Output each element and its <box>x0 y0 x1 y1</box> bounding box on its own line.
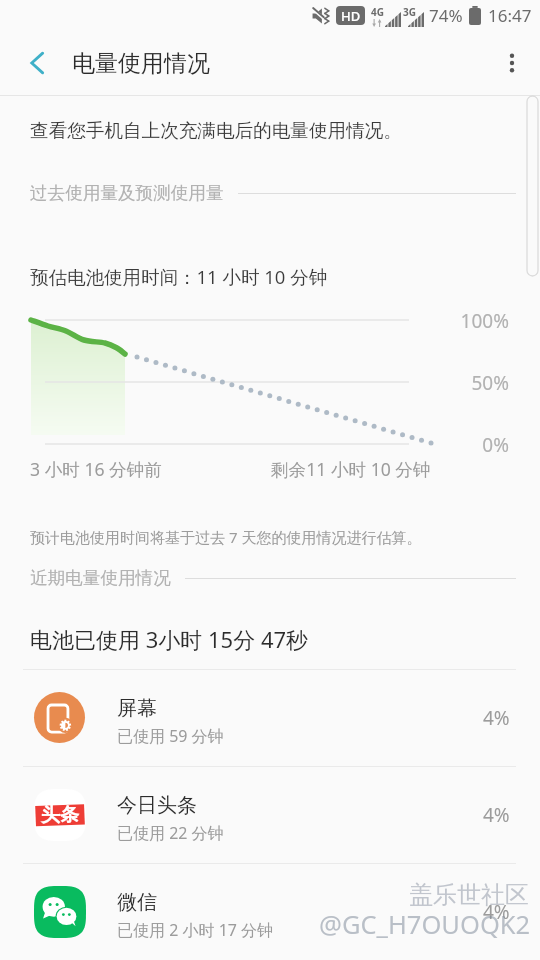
staticText: 3 小时 16 分钟前 <box>30 457 162 481</box>
staticText: 电量使用情况 <box>72 49 210 78</box>
staticText: 查看您手机自上次充满电后的电量使用情况。 <box>30 119 402 142</box>
staticText: 今日头条 <box>117 793 197 818</box>
staticText: 4G <box>371 5 384 19</box>
staticText: 电池已使用 3小时 15分 47秒 <box>30 624 309 654</box>
button[interactable]: 屏幕 <box>0 669 540 766</box>
staticText: 剩余11 小时 10 分钟 <box>271 457 431 481</box>
button[interactable]: Back <box>10 35 66 91</box>
staticText: 已使用 59 分钟 <box>117 725 224 747</box>
staticText: 盖乐世社区 <box>409 880 529 910</box>
staticText: 100% <box>0 308 509 334</box>
staticText: 预估电池使用时间：11 小时 10 分钟 <box>30 264 328 289</box>
button[interactable]: More options <box>484 35 540 91</box>
staticText: 近期电量使用情况 <box>30 567 171 589</box>
button[interactable]: 微信 <box>0 863 540 960</box>
staticText: 0% <box>0 432 509 458</box>
staticText: 4% <box>483 802 510 828</box>
staticText: 50% <box>0 370 509 396</box>
staticText: 微信 <box>117 890 157 915</box>
staticText: 过去使用量及预测使用量 <box>30 182 224 204</box>
staticText: 已使用 22 分钟 <box>117 822 224 844</box>
staticText: 4% <box>483 899 510 925</box>
staticText: 预计电池使用时间将基于过去 7 天您的使用情况进行估算。 <box>30 527 422 547</box>
staticText: 74% <box>429 4 463 27</box>
staticText: 3G <box>403 5 416 19</box>
staticText: 已使用 2 小时 17 分钟 <box>117 919 274 941</box>
staticText: 屏幕 <box>117 696 157 721</box>
staticText: 4% <box>483 705 510 731</box>
staticText: @GC_H7OUOQK2 <box>319 907 531 942</box>
staticText: 16:47 <box>488 4 532 27</box>
staticText: 头条 <box>41 803 79 827</box>
button[interactable]: 头条 <box>0 766 540 863</box>
staticText: HD <box>341 7 361 25</box>
